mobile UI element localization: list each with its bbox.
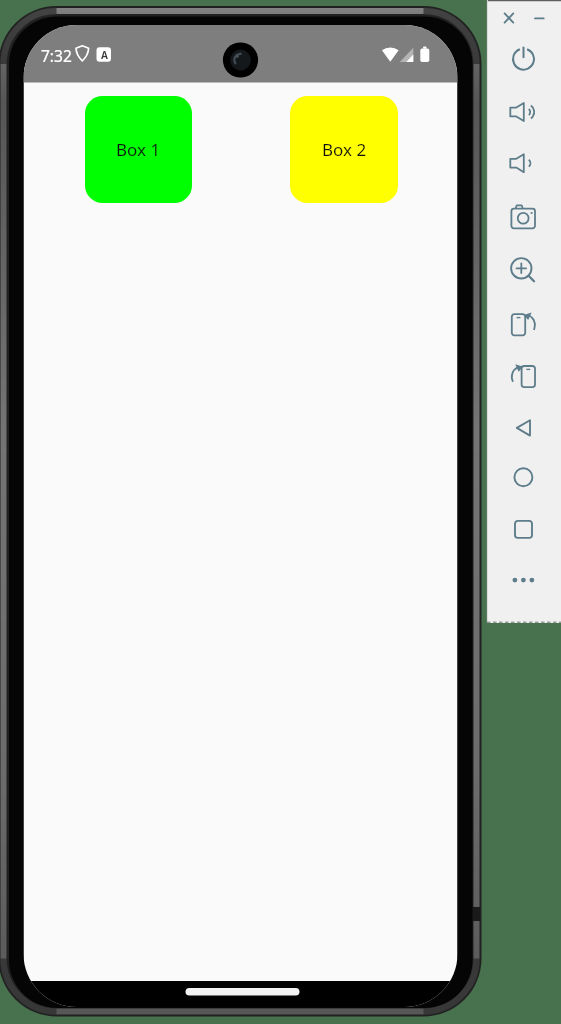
button[interactable] <box>503 509 543 549</box>
button[interactable] <box>503 353 543 393</box>
staticText: A <box>101 48 108 62</box>
button[interactable] <box>503 94 543 134</box>
button[interactable] <box>503 145 543 185</box>
staticText: Box 1 <box>116 138 161 161</box>
button[interactable] <box>503 560 543 600</box>
button[interactable] <box>503 250 543 290</box>
button[interactable] <box>503 42 543 82</box>
button[interactable]: Box 2 <box>290 96 398 203</box>
button[interactable] <box>503 457 543 497</box>
button[interactable] <box>498 7 520 29</box>
staticText: Box 2 <box>322 138 367 161</box>
button[interactable]: Box 1 <box>85 96 192 203</box>
staticText: 7:32 <box>41 45 72 66</box>
button[interactable] <box>503 405 543 445</box>
button[interactable] <box>528 7 550 29</box>
button[interactable] <box>503 301 543 341</box>
button[interactable] <box>503 197 543 237</box>
